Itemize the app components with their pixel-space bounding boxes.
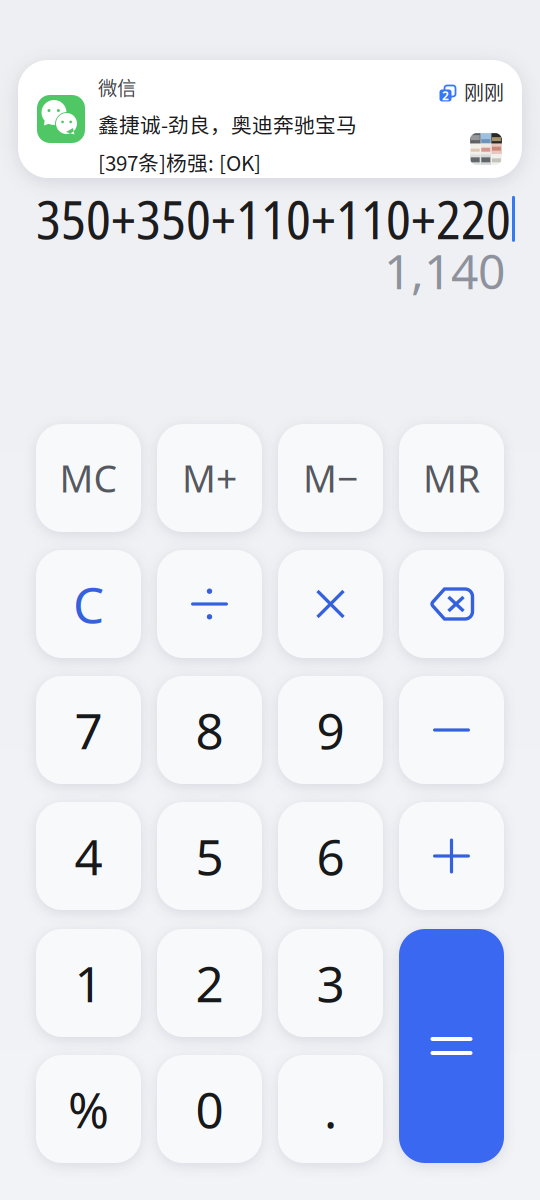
staticText: 1: [74, 949, 102, 1017]
button[interactable]: Divide: [157, 550, 262, 658]
button[interactable]: 2: [157, 929, 262, 1037]
staticText: MR: [423, 453, 480, 503]
staticText: 350+350+110+110+220: [36, 183, 511, 255]
button[interactable]: C: [36, 550, 141, 658]
button[interactable]: 4: [36, 802, 141, 910]
button[interactable]: 0: [157, 1055, 262, 1163]
button[interactable]: MR: [399, 424, 504, 532]
button[interactable]: 7: [36, 676, 141, 784]
button[interactable]: 3: [278, 929, 383, 1037]
button[interactable]: Minus: [399, 676, 504, 784]
button[interactable]: 5: [157, 802, 262, 910]
button[interactable]: .: [278, 1055, 383, 1163]
staticText: 刚刚: [464, 77, 504, 106]
button[interactable]: %: [36, 1055, 141, 1163]
staticText: 2: [195, 949, 223, 1017]
button[interactable]: 6: [278, 802, 383, 910]
staticText: 2: [442, 87, 449, 103]
button[interactable]: Backspace: [399, 550, 504, 658]
button[interactable]: Equals: [399, 929, 504, 1163]
staticText: 0: [195, 1075, 223, 1143]
staticText: MC: [59, 453, 117, 503]
staticText: 鑫捷诚-劲良，奥迪奔驰宝马: [98, 109, 357, 139]
button[interactable]: M−: [278, 424, 383, 532]
button[interactable]: 1: [36, 929, 141, 1037]
staticText: 8: [195, 696, 223, 764]
staticText: [397条]杨强: [OK]: [98, 147, 261, 177]
staticText: 3: [316, 949, 344, 1017]
staticText: 微信: [98, 73, 136, 101]
staticText: M−: [303, 453, 358, 503]
staticText: C: [73, 570, 104, 638]
button[interactable]: 微信: [18, 60, 522, 178]
staticText: 5: [195, 822, 223, 890]
button[interactable]: Plus: [399, 802, 504, 910]
staticText: M+: [182, 453, 237, 503]
staticText: 6: [316, 822, 344, 890]
staticText: 9: [316, 696, 344, 764]
button[interactable]: MC: [36, 424, 141, 532]
staticText: 1,140: [384, 238, 505, 303]
staticText: 4: [74, 822, 102, 890]
staticText: 7: [74, 696, 102, 764]
button[interactable]: M+: [157, 424, 262, 532]
button[interactable]: 8: [157, 676, 262, 784]
staticText: .: [324, 1075, 337, 1143]
staticText: %: [68, 1075, 109, 1143]
button[interactable]: 9: [278, 676, 383, 784]
button[interactable]: Multiply: [278, 550, 383, 658]
